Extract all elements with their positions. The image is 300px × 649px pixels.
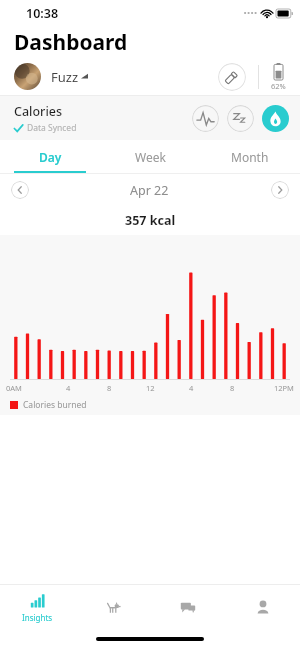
button[interactable]: Calories [262, 105, 289, 132]
staticText: 62% [271, 81, 286, 91]
button[interactable]: Week [100, 140, 200, 173]
staticText: Apr 22 [130, 182, 169, 199]
staticText: 4 [189, 383, 194, 393]
staticText: Day [39, 149, 62, 165]
button[interactable]: Fuzz [14, 63, 88, 90]
button[interactable]: Next day [271, 181, 289, 199]
button[interactable]: Calories burned [10, 399, 87, 411]
button[interactable]: Day [0, 140, 100, 173]
staticText: Calories burned [23, 399, 87, 411]
button[interactable]: Calories [14, 103, 77, 134]
button[interactable]: Profile [225, 585, 300, 629]
staticText: Fuzz [51, 68, 79, 86]
button[interactable]: Pets [75, 585, 150, 629]
button[interactable]: Activity [192, 105, 219, 132]
staticText: Calories [14, 103, 63, 120]
staticText: 8 [230, 383, 235, 393]
button[interactable]: Messages [150, 585, 225, 629]
staticText: 8 [107, 383, 112, 393]
staticText: Data Synced [27, 122, 77, 134]
button[interactable]: Previous day [11, 181, 29, 199]
staticText: 12 [146, 383, 155, 393]
staticText: Week [135, 149, 166, 165]
button[interactable]: Sleep [227, 105, 254, 132]
staticText: 0AM [6, 383, 22, 393]
staticText: 4 [66, 383, 71, 393]
staticText: Insights [22, 612, 53, 623]
button[interactable]: Flashlight [218, 63, 246, 91]
staticText: Month [231, 149, 269, 165]
staticText: 12PM [274, 383, 294, 393]
staticText: 357 kcal [125, 212, 176, 229]
button[interactable]: Month [200, 140, 300, 173]
button[interactable]: Battery 62 percent [271, 63, 286, 91]
staticText: Dashboard [14, 28, 128, 57]
staticText: 10:38 [26, 5, 59, 22]
button[interactable]: Insights [0, 585, 75, 629]
